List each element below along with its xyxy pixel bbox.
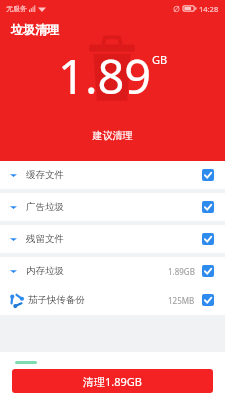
button[interactable]: 清理1.89GB bbox=[12, 369, 213, 393]
staticText: 残留文件 bbox=[26, 233, 64, 245]
button[interactable]: Selected 广告垃圾 bbox=[202, 201, 214, 213]
staticText: 125MB bbox=[168, 295, 195, 306]
button[interactable]: 残留文件 bbox=[0, 225, 225, 253]
button[interactable]: 缓存文件 bbox=[0, 161, 225, 189]
other: Battery bbox=[183, 5, 196, 12]
staticText: 内存垃圾 bbox=[26, 265, 64, 277]
staticText: 茄子快传备份 bbox=[28, 294, 85, 306]
staticText: 1.89GB bbox=[168, 266, 195, 277]
other: Silent bbox=[173, 5, 180, 13]
staticText: 14:28 bbox=[199, 4, 219, 14]
staticText: 垃圾清理 bbox=[11, 22, 59, 37]
staticText: 1.89 bbox=[58, 44, 152, 108]
button[interactable]: Selected 内存垃圾 bbox=[202, 265, 214, 277]
button[interactable]: 茄子快传备份 bbox=[0, 285, 225, 315]
staticText: 清理1.89GB bbox=[83, 374, 142, 389]
staticText: 无服务 bbox=[6, 4, 27, 13]
staticText: 广告垃圾 bbox=[26, 201, 64, 213]
staticText: 缓存文件 bbox=[26, 169, 64, 181]
button[interactable]: Selected 残留文件 bbox=[202, 233, 214, 245]
staticText: GB bbox=[152, 52, 168, 67]
staticText: 建议清理 bbox=[0, 129, 225, 142]
button[interactable]: Selected 茄子快传备份 bbox=[202, 294, 214, 306]
button[interactable]: Selected 缓存文件 bbox=[202, 169, 214, 181]
button[interactable]: 广告垃圾 bbox=[0, 193, 225, 221]
button[interactable]: 内存垃圾 bbox=[0, 257, 225, 285]
